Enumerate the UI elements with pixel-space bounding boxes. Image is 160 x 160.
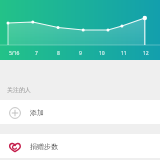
button[interactable]: Donate steps [0, 134, 160, 158]
staticText: 7 [35, 50, 38, 57]
staticText: 捐赠步数 [30, 142, 58, 151]
staticText: 8 [57, 50, 60, 57]
staticText: 添加 [30, 108, 44, 117]
staticText: 12 [143, 50, 149, 57]
staticText: 11 [121, 50, 127, 57]
staticText: 10 [99, 50, 105, 57]
button[interactable]: 5/16 [0, 0, 160, 60]
staticText: 5/16 [9, 50, 20, 57]
staticText: 9 [79, 50, 82, 57]
button[interactable]: Add person [0, 100, 160, 124]
staticText: 关注的人 [7, 86, 31, 94]
